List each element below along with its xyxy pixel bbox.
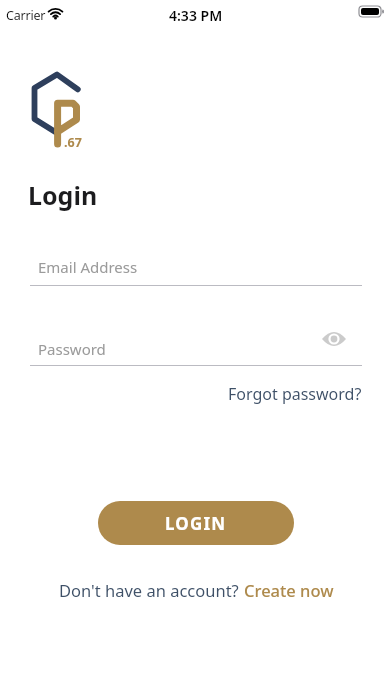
- staticText: Password: [38, 339, 106, 359]
- staticText: 4:33 PM: [169, 6, 223, 25]
- button[interactable]: [322, 329, 346, 349]
- button[interactable]: Forgot password?: [228, 383, 362, 405]
- button[interactable]: Password: [30, 330, 362, 366]
- button[interactable]: LOGIN: [98, 501, 294, 545]
- staticText: Carrier: [6, 7, 46, 24]
- staticText: Don't have an account?: [59, 579, 244, 601]
- staticText: .67: [64, 134, 82, 151]
- staticText: LOGIN: [165, 512, 227, 535]
- button[interactable]: Create now: [244, 579, 334, 601]
- staticText: Email Address: [38, 257, 138, 277]
- button[interactable]: Email Address: [30, 248, 362, 286]
- staticText: Login: [28, 178, 98, 212]
